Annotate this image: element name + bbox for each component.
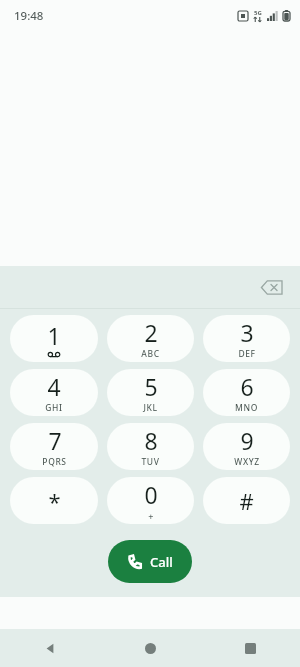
button[interactable]: 2	[107, 315, 194, 362]
staticText: 7	[48, 425, 62, 456]
staticText: Call	[150, 553, 173, 571]
staticText: MNO	[235, 402, 258, 414]
button[interactable]: Call	[108, 540, 192, 583]
staticText: 1	[47, 320, 61, 351]
button[interactable]: 4	[10, 369, 98, 416]
staticText: 3	[240, 317, 254, 348]
button[interactable]: 6	[203, 369, 290, 416]
staticText: GHI	[45, 402, 63, 414]
button[interactable]: *	[10, 477, 98, 524]
button[interactable]: 8	[107, 423, 194, 470]
button[interactable]: 1	[10, 315, 98, 362]
staticText: ABC	[141, 348, 160, 360]
staticText: +	[148, 510, 154, 522]
staticText: DEF	[238, 348, 256, 360]
staticText: 6	[240, 371, 254, 402]
staticText: 9	[240, 425, 254, 456]
staticText: 5	[144, 371, 158, 402]
staticText: 0	[144, 479, 158, 510]
button[interactable]: Home	[100, 629, 200, 667]
button[interactable]: 3	[203, 315, 290, 362]
staticText: 4	[47, 371, 61, 402]
button[interactable]: 5	[107, 369, 194, 416]
staticText: #	[239, 486, 254, 516]
staticText: 5G	[254, 9, 262, 17]
staticText: TUV	[141, 456, 160, 468]
button[interactable]: 7	[10, 423, 98, 470]
button[interactable]: 0	[107, 477, 194, 524]
staticText: PQRS	[42, 456, 67, 468]
staticText: 8	[144, 425, 158, 456]
staticText: 2	[144, 317, 158, 348]
staticText: JKL	[143, 402, 158, 414]
button[interactable]: #	[203, 477, 290, 524]
staticText: WXYZ	[234, 456, 260, 468]
staticText: 19:48	[14, 8, 44, 24]
button[interactable]: Back	[0, 629, 100, 667]
button[interactable]: Recents	[200, 629, 300, 667]
button[interactable]: Backspace	[254, 270, 288, 304]
button[interactable]: 9	[203, 423, 290, 470]
staticText: *	[48, 486, 61, 516]
